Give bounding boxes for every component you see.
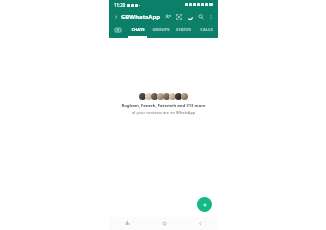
staticText: GROUPS xyxy=(152,27,170,33)
staticText: 11:20 xyxy=(114,2,126,8)
staticText: Roghani, Faezeh, Fatemeh and 313 more xyxy=(118,103,209,109)
button[interactable]: CHATS xyxy=(126,24,149,36)
staticText: STATUS xyxy=(176,27,191,33)
button[interactable]: Scan code xyxy=(174,12,183,21)
button[interactable]: Home xyxy=(146,217,182,230)
button[interactable]: Menu xyxy=(112,13,119,20)
button[interactable]: Camera xyxy=(109,24,126,36)
button[interactable]: Add contact xyxy=(163,12,172,21)
button[interactable]: STATUS xyxy=(172,24,195,36)
button[interactable]: GROUPS xyxy=(149,24,172,36)
button[interactable]: New chat xyxy=(197,197,212,212)
button[interactable]: Search xyxy=(196,12,205,21)
button[interactable]: Back xyxy=(182,217,218,230)
button[interactable]: Call xyxy=(185,12,194,21)
staticText: of your contacts are on WhatsApp xyxy=(118,110,209,115)
button[interactable]: More options xyxy=(206,12,215,21)
button[interactable]: CALLS xyxy=(195,24,218,36)
button[interactable]: Recent apps xyxy=(109,217,146,230)
staticText: CALLS xyxy=(200,27,213,33)
staticText: GBWhatsApp xyxy=(121,13,160,21)
staticText: CHATS xyxy=(131,27,145,33)
